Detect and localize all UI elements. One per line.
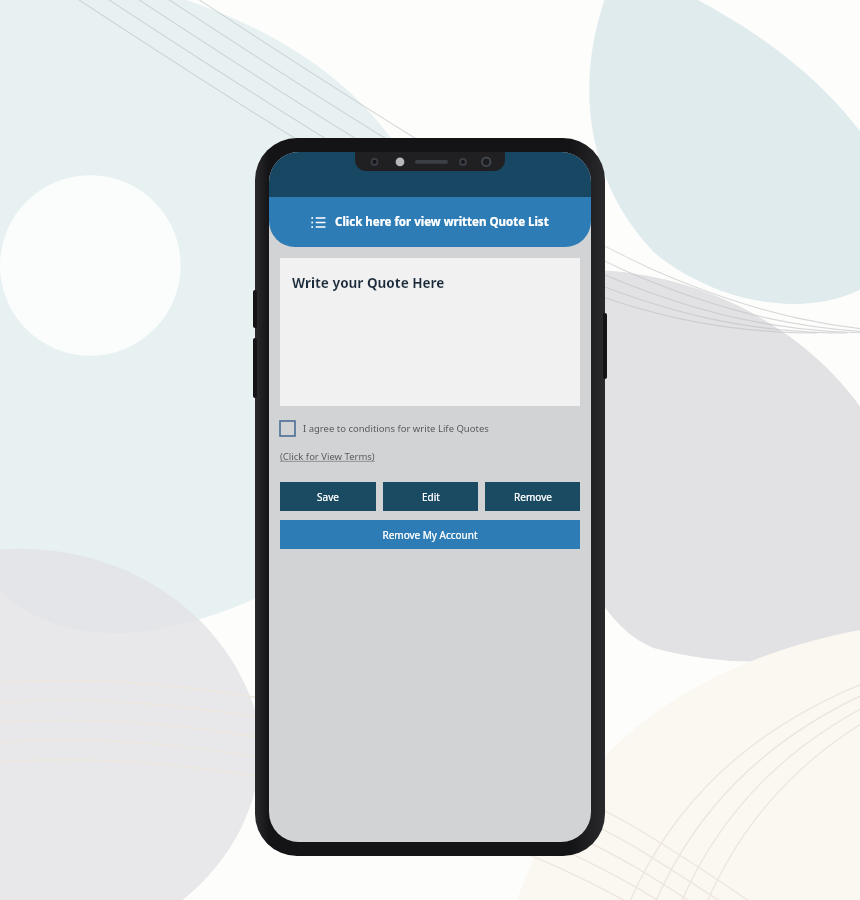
- button[interactable]: Edit: [383, 482, 478, 511]
- button[interactable]: Quote list: [269, 197, 591, 247]
- button[interactable]: Remove My Account: [280, 520, 580, 549]
- staticText: Remove My Account: [382, 528, 478, 542]
- staticText: Remove: [514, 490, 552, 504]
- button[interactable]: Write your Quote Here: [280, 258, 580, 406]
- staticText: Write your Quote Here: [292, 274, 445, 292]
- button[interactable]: Save: [280, 482, 376, 511]
- staticText: (Click for View Terms): [280, 450, 375, 463]
- other: Quote list: [311, 216, 326, 229]
- button[interactable]: (Click for View Terms): [280, 450, 375, 463]
- staticText: Click here for view written Quote List: [335, 214, 549, 230]
- staticText: Save: [317, 490, 339, 504]
- button[interactable]: I agree to conditions for write Life Quo…: [280, 421, 489, 436]
- button[interactable]: Remove: [485, 482, 580, 511]
- staticText: I agree to conditions for write Life Quo…: [303, 422, 489, 435]
- staticText: Edit: [422, 490, 440, 504]
